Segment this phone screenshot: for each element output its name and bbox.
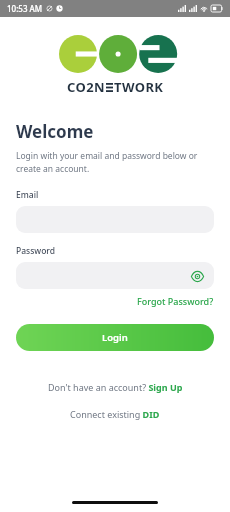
- staticText: Email: [16, 189, 39, 201]
- staticText: Forgot Password?: [137, 295, 214, 307]
- staticText: Welcome: [16, 120, 94, 143]
- button[interactable]: Connect existing DID: [70, 408, 160, 420]
- staticText: 10:53 AM: [7, 3, 43, 14]
- button[interactable]: Forgot Password?: [137, 295, 214, 307]
- staticText: Connect existing DID: [70, 408, 160, 420]
- staticText: CO2N: [67, 78, 105, 96]
- staticText: Password: [16, 245, 56, 257]
- button[interactable]: Show password: [16, 262, 214, 289]
- staticText: Don't have an account? Sign Up: [48, 381, 183, 393]
- button[interactable]: Show password: [189, 268, 205, 284]
- button[interactable]: Login: [16, 324, 214, 351]
- button[interactable]: Don't have an account? Sign Up: [48, 381, 183, 393]
- staticText: Login: [102, 331, 128, 344]
- staticText: TWORK: [114, 78, 164, 96]
- staticText: Login with your email and password below…: [16, 150, 212, 175]
